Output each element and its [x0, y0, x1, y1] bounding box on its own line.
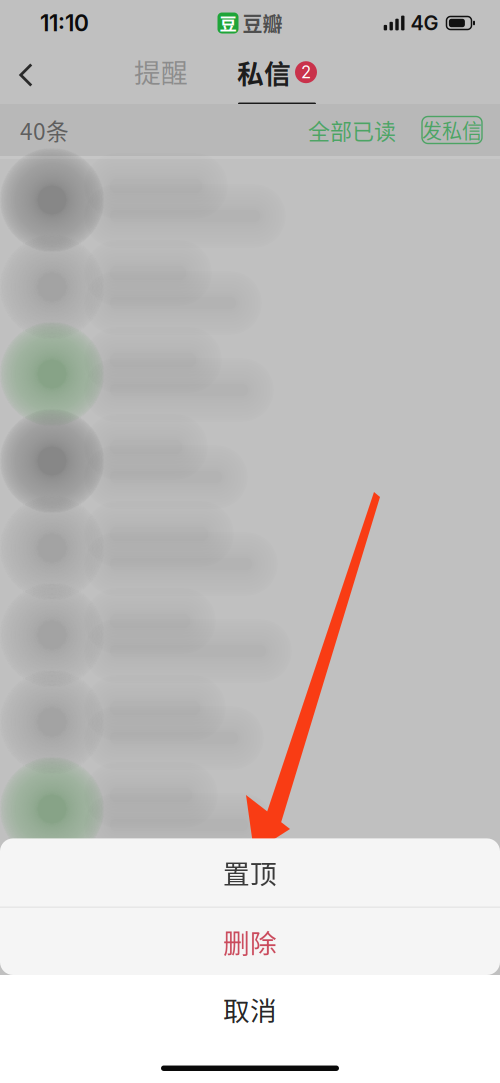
staticText: 2: [301, 62, 311, 82]
button[interactable]: 全部已读: [302, 106, 402, 154]
button[interactable]: 私信: [234, 46, 320, 104]
staticText: 删除: [223, 922, 277, 961]
staticText: 4G: [410, 11, 438, 35]
button[interactable]: 取消: [0, 975, 500, 1043]
staticText: 豆瓣: [242, 8, 282, 37]
staticText: 取消: [223, 990, 277, 1028]
staticText: 40条: [20, 114, 69, 146]
staticText: 全部已读: [308, 114, 396, 146]
button[interactable]: 发私信: [422, 116, 482, 143]
button[interactable]: 提醒: [120, 46, 202, 104]
staticText: 豆: [219, 10, 236, 36]
button[interactable]: 删除: [0, 908, 500, 975]
button[interactable]: 置顶: [0, 838, 500, 906]
button[interactable]: 返回: [0, 46, 52, 104]
staticText: 私信: [237, 53, 291, 91]
staticText: 发私信: [422, 115, 482, 144]
staticText: 11:10: [40, 9, 89, 37]
staticText: 置顶: [223, 853, 277, 892]
staticText: 提醒: [134, 52, 188, 90]
